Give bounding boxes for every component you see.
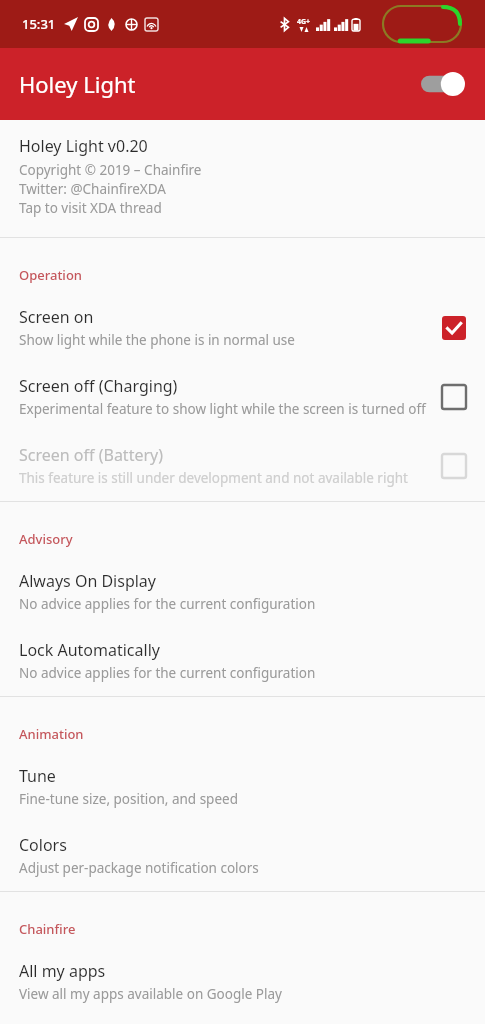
staticText: Operation (19, 266, 82, 284)
staticText: Advisory (19, 530, 73, 548)
button[interactable]: Colors (0, 822, 485, 891)
staticText: Fine-tune size, position, and speed (19, 790, 238, 808)
staticText: Lock Automatically (19, 639, 160, 661)
button[interactable]: Screen on (0, 294, 485, 363)
staticText: This feature is still under development … (19, 469, 432, 487)
staticText: Holey Light (19, 69, 136, 99)
button[interactable]: Enable Holey Light (415, 67, 471, 101)
staticText: All my apps (19, 960, 106, 982)
staticText: 15:31 (22, 15, 56, 33)
staticText: 4G+ (297, 17, 311, 27)
button[interactable]: Screen off (Battery) (0, 432, 485, 501)
button[interactable]: Always On Display (0, 558, 485, 627)
staticText: Colors (19, 834, 67, 856)
staticText: Adjust per-package notification colors (19, 859, 259, 877)
staticText: Screen on (19, 306, 94, 328)
button[interactable]: All my apps (0, 948, 485, 1017)
staticText: Show light while the phone is in normal … (19, 331, 295, 349)
staticText: No advice applies for the current config… (19, 664, 316, 682)
staticText: Experimental feature to show light while… (19, 400, 426, 418)
staticText: Tap to visit XDA thread (19, 199, 162, 217)
staticText: Screen off (Charging) (19, 375, 178, 397)
button[interactable]: Tune (0, 753, 485, 822)
staticText: View all my apps available on Google Pla… (19, 985, 282, 1003)
staticText: Copyright © 2019 – Chainfire (19, 161, 202, 179)
staticText: Chainfire (19, 920, 76, 938)
staticText: Holey Light v0.20 (19, 135, 148, 157)
staticText: Screen off (Battery) (19, 444, 164, 466)
staticText: Animation (19, 725, 84, 743)
staticText: Tune (19, 765, 56, 787)
staticText: Always On Display (19, 570, 157, 592)
staticText: No advice applies for the current config… (19, 595, 316, 613)
button[interactable]: Holey Light v0.20 (0, 120, 485, 237)
staticText: Twitter: @ChainfireXDA (19, 180, 166, 198)
button[interactable]: Screen off (Charging) (0, 363, 485, 432)
button[interactable]: Lock Automatically (0, 627, 485, 696)
